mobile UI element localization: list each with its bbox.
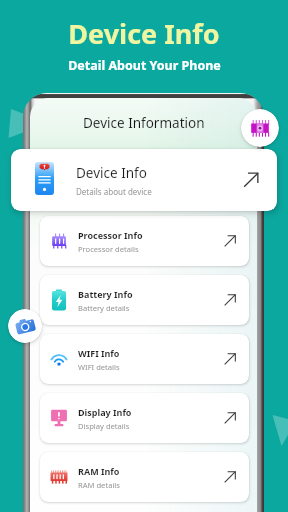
button[interactable]: Processor Info [40,216,249,266]
button[interactable]: WIFI Info [40,334,249,384]
button[interactable]: Processor [241,109,279,147]
staticText: Display Info [78,406,132,418]
button[interactable]: Camera [8,309,42,343]
staticText: Processor details [78,244,139,254]
button[interactable]: Device Info [11,149,277,211]
staticText: Device Info [76,164,147,182]
button[interactable]: Display Info [40,393,249,443]
staticText: Processor Info [78,229,143,241]
button[interactable]: RAM Info [40,452,249,502]
staticText: Device Info [68,15,220,52]
staticText: WIFI details [78,362,120,372]
button[interactable]: Battery Info [40,275,249,325]
staticText: RAM Info [78,465,120,477]
staticText: Details about device [76,186,152,197]
staticText: RAM details [78,480,120,490]
staticText: Battery details [78,303,130,313]
staticText: WIFI Info [78,347,120,359]
staticText: Device Information [83,114,205,132]
staticText: Battery Info [78,288,133,300]
staticText: Display details [78,421,130,431]
staticText: Detail About Your Phone [68,57,221,74]
